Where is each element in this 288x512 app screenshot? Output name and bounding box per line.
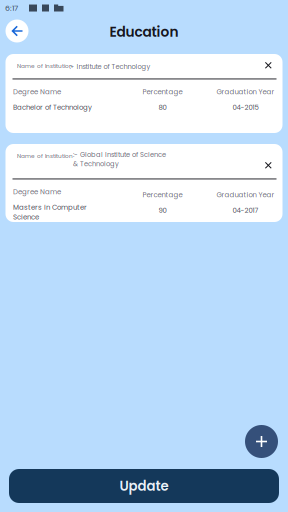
button[interactable]: Remove education entry: [260, 57, 277, 74]
staticText: Bachelor of Technology: [13, 102, 92, 112]
staticText: Name of Institution: [17, 62, 73, 70]
staticText: Update: [119, 477, 168, 495]
staticText: 6:17: [5, 3, 18, 13]
staticText: 80: [158, 102, 166, 112]
staticText: Percentage: [142, 190, 182, 200]
staticText: Education: [109, 22, 178, 42]
staticText: Graduation Year: [216, 190, 274, 200]
button[interactable]: Back: [5, 19, 28, 42]
staticText: Graduation Year: [216, 87, 274, 97]
staticText: Percentage: [142, 87, 182, 97]
staticText: 04-2015: [232, 102, 258, 112]
button[interactable]: Update: [9, 469, 279, 503]
button[interactable]: Add education: [245, 425, 278, 458]
staticText: 04-2017: [232, 205, 258, 215]
staticText: 90: [158, 205, 166, 215]
staticText: Masters in Computer Science: [13, 202, 87, 222]
staticText: :- Institute of Technology: [69, 62, 150, 71]
staticText: Degree Name: [13, 187, 61, 197]
button[interactable]: Remove education entry: [260, 157, 277, 174]
staticText: Name of Institution: [17, 152, 73, 160]
staticText: :- Global Institute of Science & Technol…: [73, 150, 166, 169]
staticText: Degree Name: [13, 87, 61, 97]
